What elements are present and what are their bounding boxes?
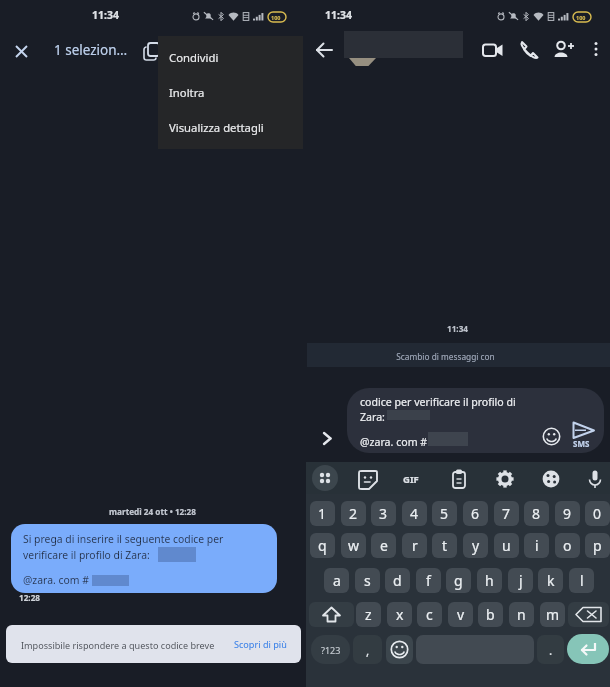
button[interactable]: 1: [310, 501, 335, 526]
button[interactable]: y: [463, 533, 488, 558]
button[interactable]: .: [537, 635, 564, 664]
staticText: m: [546, 605, 560, 624]
button[interactable]: a: [324, 568, 349, 593]
button[interactable]: Copia: [140, 38, 164, 62]
staticText: 100: [271, 14, 281, 21]
staticText: f: [426, 571, 431, 590]
staticText: h: [485, 571, 494, 590]
button[interactable]: 4: [402, 501, 427, 526]
button[interactable]: GIF: [404, 468, 426, 490]
staticText: 1 selezion…: [54, 41, 128, 59]
button[interactable]: 7: [494, 501, 519, 526]
staticText: v: [457, 605, 465, 624]
staticText: @zara. com #: [23, 573, 89, 587]
button[interactable]: ?123: [311, 635, 350, 664]
button[interactable]: s: [355, 568, 380, 593]
staticText: 7: [502, 504, 511, 523]
staticText: x: [396, 605, 404, 624]
staticText: ?123: [321, 644, 341, 656]
button[interactable]: 5: [432, 501, 457, 526]
button[interactable]: k: [538, 568, 563, 593]
button[interactable]: l: [569, 568, 594, 593]
staticText: 11:34: [325, 8, 352, 22]
staticText: s: [364, 571, 371, 590]
button[interactable]: Cancella: [568, 602, 609, 627]
button[interactable]: Appunti: [448, 468, 470, 490]
button[interactable]: p: [585, 533, 610, 558]
button[interactable]: 6: [463, 501, 488, 526]
staticText: a: [333, 571, 341, 590]
button[interactable]: n: [509, 602, 534, 627]
button[interactable]: ,: [353, 635, 382, 664]
button[interactable]: u: [494, 533, 519, 558]
staticText: y: [472, 536, 480, 555]
button[interactable]: v: [448, 602, 473, 627]
staticText: 11:34: [305, 323, 610, 334]
button[interactable]: f: [416, 568, 441, 593]
staticText: 5: [440, 504, 449, 523]
button[interactable]: codice per verificare il profilo di: [347, 388, 604, 453]
button[interactable]: o: [555, 533, 580, 558]
button[interactable]: Impostazioni: [494, 468, 516, 490]
staticText: 1: [318, 504, 327, 523]
staticText: j: [519, 571, 523, 590]
button[interactable]: i: [524, 533, 549, 558]
staticText: Inoltra: [169, 85, 205, 100]
staticText: Scopri di più: [234, 638, 287, 650]
button[interactable]: j: [508, 568, 533, 593]
staticText: Si prega di inserire il seguente codice …: [23, 532, 224, 546]
button[interactable]: d: [385, 568, 410, 593]
button[interactable]: Emoji: [386, 635, 413, 664]
staticText: .: [549, 642, 553, 658]
button[interactable]: r: [402, 533, 427, 558]
staticText: 12:28: [19, 592, 41, 603]
button[interactable]: Inoltra: [158, 77, 303, 107]
button[interactable]: 3: [371, 501, 396, 526]
button[interactable]: Invia SMS: [571, 421, 597, 449]
button[interactable]: Condividi: [158, 42, 303, 72]
button[interactable]: Voce: [584, 468, 606, 490]
button[interactable]: Espandi: [318, 428, 340, 450]
staticText: c: [426, 605, 433, 624]
button[interactable]: Si prega di inserire il seguente codice …: [11, 524, 277, 593]
staticText: 3: [379, 504, 388, 523]
button[interactable]: Tema: [540, 468, 562, 490]
button[interactable]: e: [371, 533, 396, 558]
button[interactable]: Emoji: [542, 427, 561, 446]
button[interactable]: 9: [555, 501, 580, 526]
staticText: Zara:: [360, 410, 385, 424]
button[interactable]: z: [356, 602, 381, 627]
button[interactable]: g: [446, 568, 471, 593]
button[interactable]: Invio: [567, 634, 609, 664]
button[interactable]: Indietro: [313, 38, 337, 62]
button[interactable]: Chiama: [517, 38, 541, 62]
button[interactable]: Maiuscole: [309, 602, 354, 627]
button[interactable]: q: [310, 533, 335, 558]
staticText: 8: [532, 504, 541, 523]
button[interactable]: 2: [341, 501, 366, 526]
button[interactable]: Scopri di più: [228, 633, 292, 655]
button[interactable]: h: [477, 568, 502, 593]
button[interactable]: t: [432, 533, 457, 558]
staticText: q: [318, 536, 327, 555]
staticText: 9: [563, 504, 572, 523]
button[interactable]: Chiudi: [10, 40, 34, 64]
staticText: 100: [576, 14, 586, 21]
staticText: p: [593, 536, 602, 555]
staticText: k: [547, 571, 555, 590]
button[interactable]: b: [478, 602, 503, 627]
button[interactable]: Visualizza dettagli: [158, 112, 303, 142]
button[interactable]: Aggiungi persona: [552, 38, 576, 62]
button[interactable]: Videochiamata: [481, 38, 505, 62]
button[interactable]: w: [341, 533, 366, 558]
staticText: Visualizza dettagli: [169, 120, 264, 135]
button[interactable]: x: [387, 602, 412, 627]
button[interactable]: Sticker: [356, 468, 378, 490]
button[interactable]: 0: [585, 501, 610, 526]
button[interactable]: 8: [524, 501, 549, 526]
button[interactable]: Altre opzioni: [585, 38, 607, 60]
button[interactable]: m: [540, 602, 565, 627]
button[interactable]: Menu tastiera: [312, 465, 338, 491]
button[interactable]: c: [417, 602, 442, 627]
